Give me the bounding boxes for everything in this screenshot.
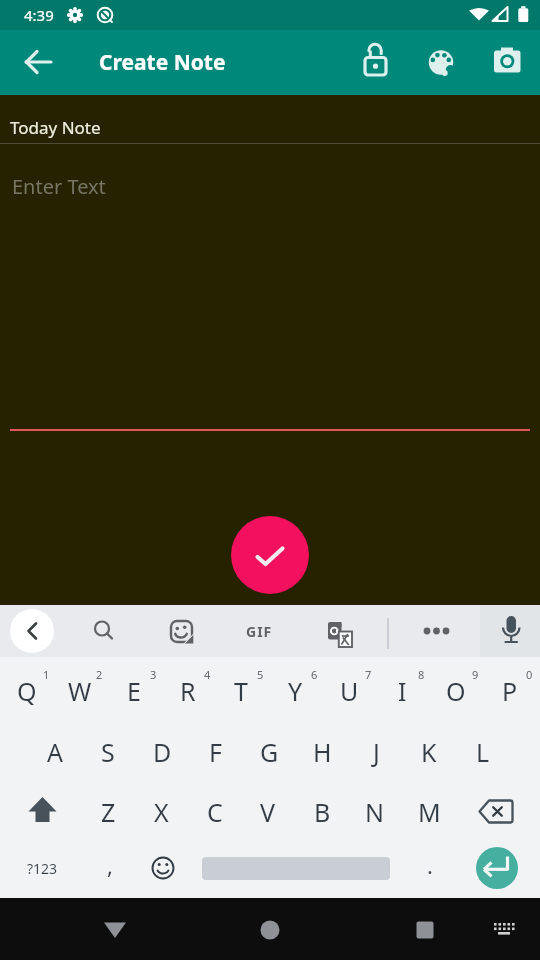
button[interactable]: W [55, 662, 105, 720]
button[interactable]: U [324, 662, 374, 720]
staticText: X [154, 795, 169, 829]
button[interactable]: E [109, 662, 159, 720]
staticText: GIF [246, 622, 273, 641]
button[interactable]: F [190, 723, 240, 781]
button[interactable]: H [297, 723, 347, 781]
staticText: O [446, 674, 466, 708]
staticText: N [365, 795, 385, 829]
button[interactable]: , [90, 840, 130, 890]
button[interactable]: . [410, 840, 450, 890]
button[interactable] [480, 605, 540, 657]
button[interactable] [401, 905, 449, 953]
button[interactable]: C [190, 783, 240, 841]
staticText: H [313, 735, 332, 769]
staticText: D [153, 735, 172, 769]
staticText: S [101, 735, 115, 769]
staticText: Create Note [99, 48, 226, 77]
button[interactable] [91, 905, 139, 953]
button[interactable]: A [30, 723, 80, 781]
button[interactable] [17, 839, 67, 897]
button[interactable]: M [404, 783, 454, 841]
staticText: 1 [43, 667, 50, 682]
button[interactable]: V [243, 783, 293, 841]
staticText: 2 [96, 667, 103, 682]
button[interactable] [140, 843, 186, 893]
button[interactable]: S [83, 723, 133, 781]
button[interactable]: N [350, 783, 400, 841]
staticText: Y [288, 674, 303, 708]
button[interactable]: O [431, 662, 481, 720]
staticText: U [340, 674, 359, 708]
button[interactable]: Y [270, 662, 320, 720]
button[interactable] [472, 783, 522, 841]
staticText: 3 [150, 667, 157, 682]
staticText: Enter Text [12, 173, 106, 200]
button[interactable] [414, 609, 458, 653]
staticText: M [418, 795, 441, 829]
staticText: F [209, 735, 222, 769]
button[interactable] [80, 609, 124, 653]
button[interactable] [159, 609, 203, 653]
button[interactable]: L [458, 723, 508, 781]
staticText: Q [17, 674, 37, 708]
staticText: V [260, 795, 276, 829]
staticText: L [476, 735, 490, 769]
button[interactable]: I [377, 662, 427, 720]
button[interactable] [351, 38, 399, 86]
button[interactable] [231, 516, 309, 594]
button[interactable]: Z [83, 783, 133, 841]
button[interactable]: D [137, 723, 187, 781]
button[interactable]: R [163, 662, 213, 720]
staticText: T [234, 674, 248, 708]
button[interactable]: Q [2, 662, 52, 720]
staticText: Today Note [10, 116, 101, 139]
button[interactable]: X [136, 783, 186, 841]
staticText: 9 [472, 667, 479, 682]
button[interactable]: B [297, 783, 347, 841]
staticText: G [260, 735, 279, 769]
button[interactable] [483, 38, 531, 86]
button[interactable] [417, 38, 465, 86]
staticText: P [502, 674, 518, 708]
button[interactable] [317, 609, 361, 653]
staticText: 4:39 [24, 5, 54, 25]
button[interactable]: T [216, 662, 266, 720]
staticText: E [127, 674, 141, 708]
button[interactable]: G [244, 723, 294, 781]
staticText: J [373, 735, 380, 769]
staticText: . [427, 850, 433, 880]
button[interactable] [476, 847, 518, 889]
staticText: W [68, 674, 92, 708]
button[interactable]: J [351, 723, 401, 781]
staticText: B [314, 795, 331, 829]
staticText: 5 [257, 667, 264, 682]
button[interactable] [10, 609, 54, 653]
staticText: , [107, 850, 113, 880]
button[interactable]: K [404, 723, 454, 781]
button[interactable] [237, 609, 281, 653]
staticText: C [207, 795, 223, 829]
staticText: 4 [204, 667, 211, 682]
button[interactable] [14, 38, 62, 86]
staticText: Z [101, 795, 116, 829]
staticText: A [47, 735, 63, 769]
staticText: R [180, 674, 196, 708]
staticText: 8 [418, 667, 425, 682]
staticText: I [398, 674, 407, 708]
staticText: ?123 [27, 859, 58, 878]
staticText: 7 [365, 667, 372, 682]
button[interactable]: P [485, 662, 535, 720]
staticText: 6 [311, 667, 318, 682]
staticText: 0 [526, 667, 533, 682]
staticText: K [421, 735, 437, 769]
button[interactable] [246, 905, 294, 953]
button[interactable] [17, 783, 67, 841]
